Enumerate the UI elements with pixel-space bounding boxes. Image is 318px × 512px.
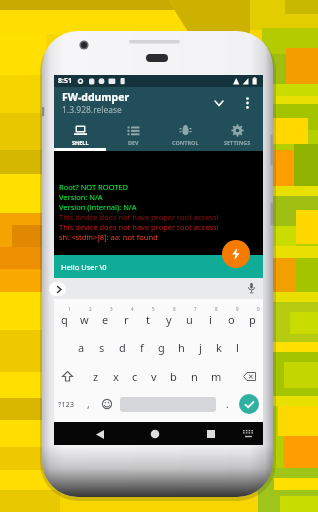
button[interactable] [49,282,66,296]
staticText: 1 [68,306,71,312]
button[interactable] [145,424,165,444]
staticText: x [113,369,119,384]
staticText: u [186,312,193,327]
button[interactable]: ?123 [58,399,75,409]
button[interactable]: r [116,306,137,327]
staticText: , [87,397,90,411]
staticText: j [199,340,202,355]
staticText: 8:51 [58,76,72,86]
button[interactable] [211,95,227,111]
staticText: s [99,340,105,355]
staticText: w [80,312,89,327]
button[interactable] [222,240,250,268]
staticText: DEV [128,139,139,146]
staticText: . [226,397,229,411]
button[interactable]: g [158,340,165,355]
button[interactable] [54,368,80,384]
staticText: z [93,369,99,384]
staticText: 7 [194,306,197,312]
button[interactable]: i [200,306,221,327]
button[interactable] [241,97,253,109]
button[interactable] [239,425,257,443]
staticText: h [178,340,185,355]
button[interactable]: y [158,306,179,327]
staticText: 0 [257,306,260,312]
staticText: a [78,340,85,355]
staticText: 3 [110,306,113,312]
button[interactable] [201,424,221,444]
button[interactable]: o [221,306,242,327]
button[interactable]: t [137,306,158,327]
button[interactable]: DEV [107,119,159,151]
button[interactable]: q [54,306,74,327]
staticText: 2 [89,306,92,312]
button[interactable]: z [93,369,99,384]
button[interactable]: a [78,340,85,355]
staticText: 9 [236,306,239,312]
staticText: SHELL [72,139,89,146]
button[interactable]: w [74,306,95,327]
staticText: 8 [215,306,218,312]
button[interactable]: e [95,306,116,327]
staticText: g [158,340,165,355]
button[interactable]: CONTROL [159,119,211,151]
staticText: 4 [131,306,134,312]
staticText: FW-ddumper [62,90,130,104]
button[interactable]: b [170,369,177,384]
button[interactable]: m [211,369,222,384]
button[interactable]: c [132,369,138,384]
staticText: SETTINGS [224,139,251,146]
button[interactable]: p [242,306,263,327]
button[interactable]: u [179,306,200,327]
button[interactable]: j [199,340,202,355]
staticText: c [132,369,138,384]
staticText: 1.3.928.release [62,104,122,116]
button[interactable]: n [191,369,198,384]
staticText: n [191,369,198,384]
staticText: ?123 [58,399,75,409]
button[interactable]: v [151,369,157,384]
button[interactable]: s [99,340,105,355]
staticText: l [236,340,239,355]
staticText: d [119,340,126,355]
button[interactable]: d [119,340,126,355]
button[interactable]: h [178,340,185,355]
button[interactable] [235,368,263,384]
staticText: b [170,369,177,384]
button[interactable]: k [216,340,222,355]
staticText: sh: <stdin>[8]: aa: not found [59,232,158,242]
staticText: e [102,312,109,327]
button[interactable]: SHELL [54,119,107,151]
staticText: m [211,369,222,384]
staticText: o [228,312,235,327]
staticText: CONTROL [172,139,199,146]
button[interactable]: f [140,340,144,355]
staticText: This device does not have proper root ac… [59,222,219,232]
button[interactable]: SETTINGS [211,119,263,151]
staticText: v [151,369,157,384]
button[interactable]: Hello User \0 [54,255,263,278]
staticText: p [249,312,256,327]
staticText: k [216,340,222,355]
button[interactable] [90,424,110,444]
button[interactable]: x [113,369,119,384]
staticText: Root? NOT ROOTED [59,182,129,192]
staticText: q [61,312,68,327]
staticText: Version (internal): N/A [59,202,137,212]
staticText: Version: N/A [59,192,103,202]
staticText: f [140,340,144,355]
button[interactable] [239,394,259,414]
staticText: 5 [152,306,155,312]
staticText: r [124,312,129,327]
staticText: Hello User \0 [61,262,107,272]
staticText: y [166,312,172,327]
staticText: This device does not have proper root ac… [59,212,219,222]
staticText: t [146,312,150,327]
staticText: i [209,312,212,327]
staticText: 6 [173,306,176,312]
button[interactable]: l [236,340,239,355]
